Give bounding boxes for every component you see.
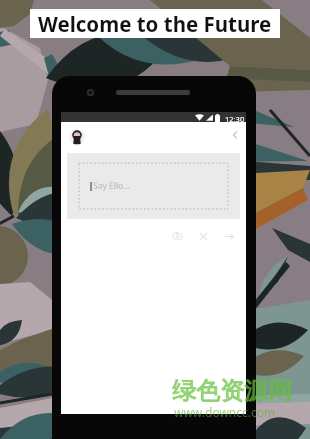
staticText: www.downcc.com	[174, 404, 276, 420]
button[interactable]: Send	[220, 227, 238, 245]
button[interactable]: Add photo	[168, 227, 186, 245]
staticText: Welcome to the Future	[38, 10, 272, 38]
button[interactable]: Close	[194, 227, 212, 245]
staticText: 12:30	[225, 114, 245, 124]
staticText: 绿色资源网	[172, 376, 292, 406]
staticText: Say Ello...	[93, 180, 131, 192]
button[interactable]: Say Ello...	[79, 163, 228, 209]
button[interactable]: Back	[228, 128, 242, 142]
button[interactable]: Profile	[69, 129, 85, 145]
